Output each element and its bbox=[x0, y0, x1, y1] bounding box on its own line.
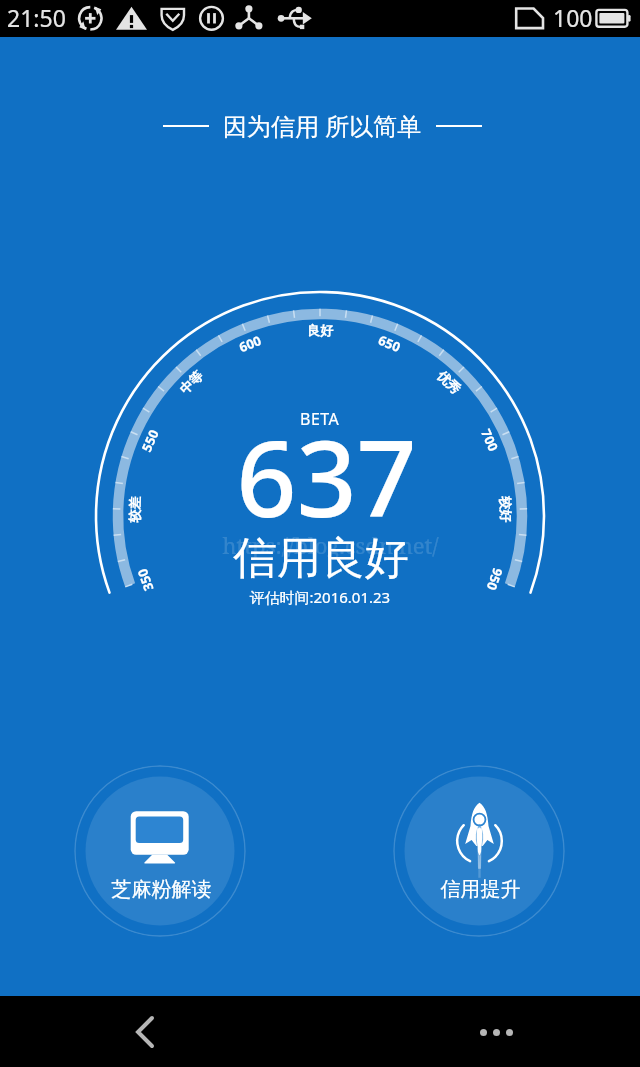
button[interactable] bbox=[393, 765, 565, 937]
button[interactable]: More options bbox=[470, 1006, 522, 1058]
button[interactable]: Back bbox=[119, 1006, 171, 1058]
button[interactable] bbox=[74, 765, 246, 937]
staticText: 因为信用 所以简单 bbox=[223, 109, 422, 142]
